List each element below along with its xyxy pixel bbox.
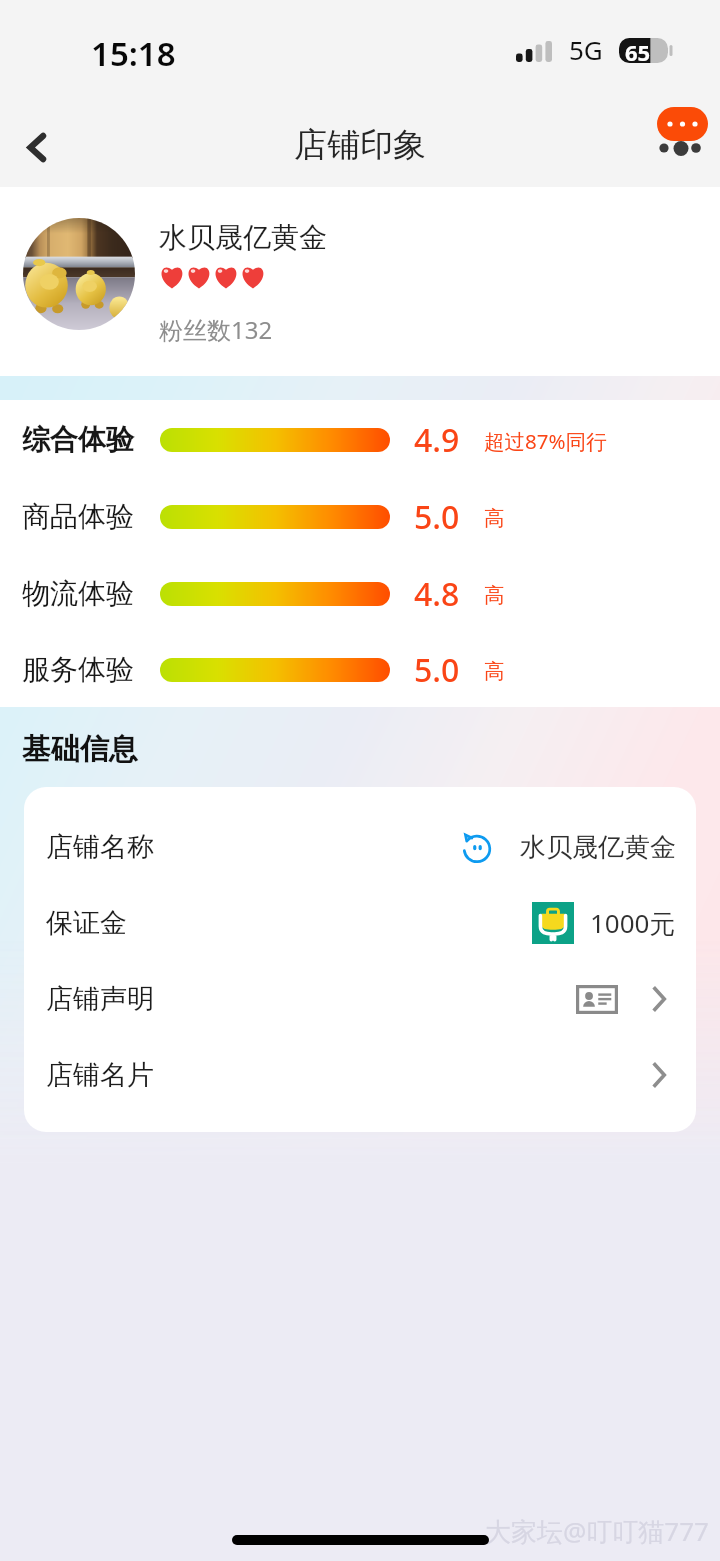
staticText: 高 <box>484 505 505 531</box>
staticText: 保证金 <box>46 906 127 940</box>
staticText: 粉丝数132 <box>159 313 273 346</box>
staticText: 高 <box>484 582 505 608</box>
staticText: 服务体验 <box>22 652 134 687</box>
staticText: 高 <box>484 658 505 684</box>
staticText: 店铺名片 <box>46 1058 154 1092</box>
staticText: 店铺声明 <box>46 982 154 1016</box>
staticText: 65 <box>625 37 651 62</box>
button[interactable]: 店铺名称 <box>24 809 696 885</box>
button[interactable]: Shop avatar <box>23 218 135 330</box>
button[interactable]: 保证金 <box>24 885 696 961</box>
staticText: 5.0 <box>414 495 460 539</box>
staticText: 5.0 <box>414 648 460 692</box>
button[interactable]: Back <box>0 93 74 187</box>
staticText: 物流体验 <box>22 576 134 611</box>
staticText: 水贝晟亿黄金 <box>159 220 327 255</box>
staticText: 商品体验 <box>22 499 134 534</box>
staticText: 超过87%同行 <box>484 427 607 455</box>
staticText: 综合体验 <box>22 422 134 457</box>
staticText: 店铺名称 <box>46 830 154 864</box>
button[interactable]: 店铺声明 <box>24 961 696 1037</box>
button[interactable]: 店铺名片 <box>24 1037 696 1113</box>
staticText: 5G <box>569 32 603 67</box>
staticText: 4.9 <box>414 418 460 462</box>
staticText: 店铺印象 <box>294 124 426 166</box>
staticText: 15:18 <box>91 31 176 76</box>
staticText: 4.8 <box>414 572 460 616</box>
button[interactable]: More options <box>653 103 712 161</box>
staticText: 基础信息 <box>22 731 138 768</box>
staticText: 水贝晟亿黄金 <box>520 831 676 864</box>
staticText: 1000元 <box>590 905 676 941</box>
staticText: 大家坛@叮叮猫777 <box>485 1513 709 1549</box>
